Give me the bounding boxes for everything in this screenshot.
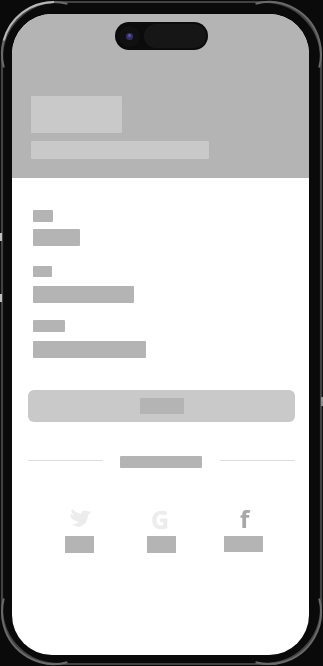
button[interactable] [58,502,102,554]
staticText: G [151,502,170,536]
button[interactable] [28,390,295,422]
button[interactable]: G [140,502,184,554]
button[interactable]: f [217,502,269,554]
staticText: f [240,502,250,535]
